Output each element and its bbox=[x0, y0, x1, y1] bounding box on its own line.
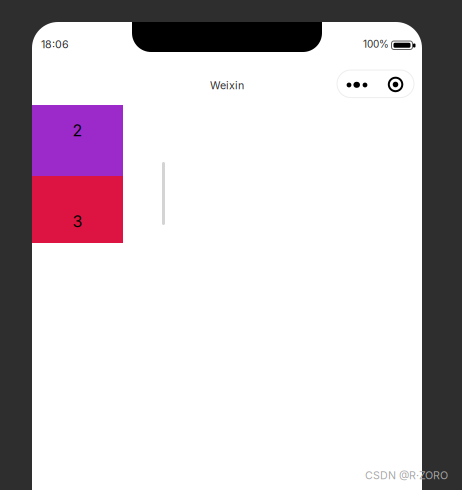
button[interactable]: 3 bbox=[32, 176, 123, 267]
staticText: 100% bbox=[363, 38, 389, 50]
button[interactable]: Close mini program bbox=[382, 70, 414, 98]
staticText: Weixin bbox=[210, 79, 244, 92]
staticText: 18:06 bbox=[41, 38, 69, 51]
staticText: CSDN @R·ZORO bbox=[365, 469, 448, 482]
staticText: 2 bbox=[72, 121, 82, 140]
button[interactable]: More bbox=[337, 70, 382, 98]
staticText: 3 bbox=[72, 212, 82, 231]
button[interactable]: 2 bbox=[32, 85, 123, 176]
